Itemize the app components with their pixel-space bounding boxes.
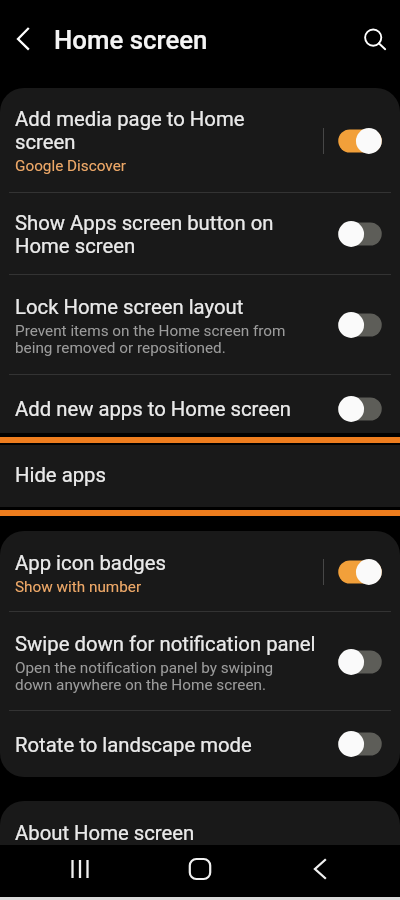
staticText: Show with number — [15, 579, 297, 596]
button[interactable]: Add media page to Home screen — [337, 126, 383, 156]
staticText: Prevent items on the Home screen from be… — [15, 323, 300, 357]
button[interactable]: Navigate up — [0, 16, 46, 62]
button[interactable]: Add new apps to Home screen — [0, 375, 400, 443]
button[interactable]: Add new apps to Home screen — [337, 394, 383, 424]
button[interactable]: Add media page to Home screen — [0, 88, 400, 193]
button[interactable]: Back — [240, 843, 400, 895]
staticText: Show Apps screen button on Home screen — [15, 212, 297, 258]
button[interactable]: Lock Home screen layout — [0, 275, 400, 375]
staticText: App icon badges — [15, 552, 297, 575]
staticText: Swipe down for notification panel — [15, 633, 327, 656]
button[interactable]: Home — [160, 843, 240, 895]
button[interactable]: Swipe down for notification panel — [337, 647, 383, 677]
staticText: Add media page to Home screen — [15, 108, 297, 154]
button[interactable]: Search — [351, 16, 397, 62]
staticText: About Home screen — [15, 822, 195, 845]
button[interactable]: App icon badges — [337, 557, 383, 587]
button[interactable]: Swipe down for notification panel — [0, 612, 400, 711]
button[interactable]: Rotate to landscape mode — [337, 729, 383, 759]
button[interactable]: App icon badges — [0, 531, 400, 612]
button[interactable]: Recent apps — [0, 843, 160, 895]
staticText: Lock Home screen layout — [15, 296, 315, 319]
staticText: Home screen — [54, 25, 208, 55]
staticText: Google Discover — [15, 158, 297, 175]
button[interactable]: Rotate to landscape mode — [0, 711, 400, 777]
button[interactable]: Show Apps screen button on Home screen — [337, 219, 383, 249]
staticText: Rotate to landscape mode — [15, 734, 315, 757]
button[interactable]: Lock Home screen layout — [337, 310, 383, 340]
button[interactable]: Hide apps — [0, 445, 400, 507]
staticText: Hide apps — [15, 464, 315, 487]
staticText: Open the notification panel by swiping d… — [15, 660, 300, 694]
button[interactable]: About Home screen — [0, 801, 400, 845]
staticText: Add new apps to Home screen — [15, 398, 315, 421]
button[interactable]: Show Apps screen button on Home screen — [0, 193, 400, 275]
